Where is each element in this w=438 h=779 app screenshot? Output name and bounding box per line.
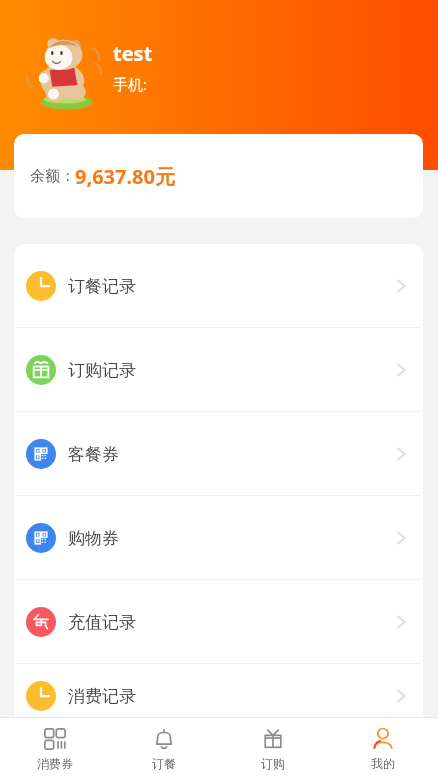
staticText: test bbox=[113, 40, 153, 67]
button[interactable]: 消费记录 bbox=[14, 664, 423, 728]
button[interactable]: 充值记录 bbox=[14, 580, 423, 664]
staticText: 消费记录 bbox=[68, 686, 136, 707]
staticText: 购物券 bbox=[68, 528, 119, 549]
button[interactable]: 余额： bbox=[14, 134, 423, 218]
staticText: 订餐记录 bbox=[68, 276, 136, 297]
staticText: 订购记录 bbox=[68, 360, 136, 381]
staticText: 手机: bbox=[113, 74, 148, 94]
button[interactable]: 购物券 bbox=[14, 496, 423, 580]
button[interactable]: 消费券 bbox=[0, 718, 109, 779]
button[interactable]: 订购 bbox=[218, 718, 328, 779]
staticText: 余额： bbox=[30, 167, 75, 186]
staticText: 订餐 bbox=[152, 756, 176, 771]
staticText: 9,637.80元 bbox=[75, 163, 175, 190]
button[interactable]: 客餐券 bbox=[14, 412, 423, 496]
button[interactable]: 订餐记录 bbox=[14, 244, 423, 328]
button[interactable]: 订餐 bbox=[109, 718, 218, 779]
staticText: 我的 bbox=[371, 756, 395, 771]
staticText: 消费券 bbox=[37, 756, 73, 771]
staticText: 充值记录 bbox=[68, 612, 136, 633]
staticText: 订购 bbox=[261, 756, 285, 771]
staticText: 客餐券 bbox=[68, 444, 119, 465]
button[interactable]: 订购记录 bbox=[14, 328, 423, 412]
button[interactable]: 我的 bbox=[328, 718, 438, 779]
